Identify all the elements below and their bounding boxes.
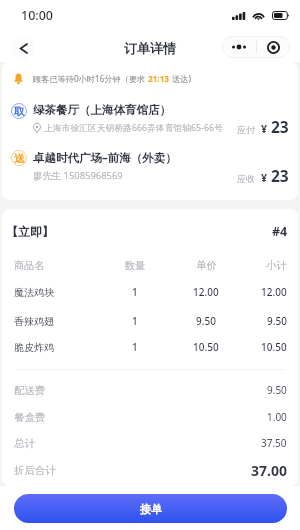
staticText: 23 [271, 165, 289, 186]
staticText: 送达) [170, 73, 191, 84]
button[interactable]: More options [222, 36, 256, 58]
staticText: 脆皮炸鸡 [14, 341, 54, 354]
staticText: 单价 [196, 259, 217, 272]
staticText: 9.50 [267, 383, 287, 397]
staticText: 香辣鸡翅 [14, 315, 54, 328]
staticText: 订单详情 [124, 40, 176, 56]
staticText: 37.00 [251, 461, 287, 480]
staticText: 10.50 [261, 340, 287, 354]
staticText: 1 [132, 285, 138, 299]
staticText: 数量 [125, 259, 146, 272]
button[interactable]: Back [11, 36, 35, 60]
staticText: 12.00 [193, 285, 219, 299]
button[interactable]: 接单 [14, 494, 287, 523]
button[interactable]: Close mini program [257, 36, 290, 58]
staticText: 小计 [266, 259, 287, 272]
staticText: 37.50 [261, 436, 287, 450]
staticText: 23 [271, 116, 289, 137]
staticText: 12.00 [261, 285, 287, 299]
staticText: 9.50 [196, 314, 216, 328]
staticText: ¥ [261, 171, 268, 185]
staticText: 上海市徐汇区天钥桥路666弄体育馆轴65-66号 [44, 122, 223, 134]
staticText: 商品名 [14, 259, 45, 272]
staticText: 总计 [14, 437, 35, 450]
staticText: 1.00 [267, 410, 287, 424]
staticText: 21:13 [148, 73, 170, 84]
staticText: 10.50 [193, 340, 219, 354]
staticText: 顾客已等待0小时16分钟（要求 [33, 73, 148, 84]
staticText: 配送费 [14, 384, 46, 397]
staticText: ¥ [261, 122, 268, 136]
staticText: 廖先生 15085968569 [33, 169, 123, 182]
staticText: 【立即】 [6, 224, 54, 239]
staticText: 魔法鸡块 [14, 286, 54, 299]
staticText: 取 [14, 105, 25, 118]
staticText: 折后合计 [14, 464, 56, 477]
staticText: 餐盒费 [14, 411, 46, 424]
staticText: 1 [132, 340, 138, 354]
staticText: 应收 [237, 173, 255, 184]
staticText: 卓越时代广场–前海（外卖） [33, 150, 177, 166]
staticText: #4 [272, 223, 288, 240]
staticText: 1 [132, 314, 138, 328]
staticText: 应付 [237, 124, 255, 135]
staticText: 9.50 [267, 314, 287, 328]
staticText: 接单 [140, 502, 162, 516]
staticText: 送 [14, 152, 25, 165]
staticText: 绿茶餐厅（上海体育馆店） [33, 103, 171, 117]
staticText: 10:00 [21, 7, 54, 24]
